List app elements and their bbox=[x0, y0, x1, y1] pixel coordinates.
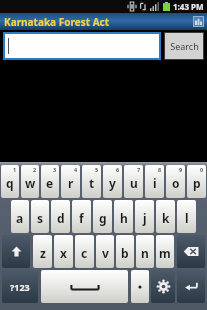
button[interactable]: 2 bbox=[21, 165, 39, 198]
button[interactable]: j bbox=[135, 200, 154, 233]
staticText: v bbox=[102, 245, 109, 261]
staticText: b bbox=[121, 245, 129, 261]
staticText: a bbox=[16, 210, 24, 226]
button[interactable]: Enter bbox=[177, 270, 205, 303]
button[interactable]: k bbox=[156, 200, 175, 233]
staticText: l bbox=[185, 210, 189, 226]
staticText: 3 bbox=[53, 166, 57, 173]
staticText: f bbox=[79, 210, 84, 226]
button[interactable]: 7 bbox=[124, 165, 143, 198]
button[interactable]: l bbox=[177, 200, 196, 233]
staticText: 6 bbox=[116, 166, 120, 173]
staticText: z bbox=[40, 245, 46, 261]
staticText: 7 bbox=[137, 166, 141, 173]
staticText: m bbox=[159, 245, 171, 261]
staticText: x bbox=[60, 245, 67, 261]
staticText: 4 bbox=[74, 166, 78, 173]
staticText: 1:43 PM bbox=[173, 1, 204, 12]
staticText: w bbox=[25, 175, 36, 191]
button[interactable]: v bbox=[96, 235, 114, 268]
staticText: Search bbox=[170, 40, 199, 52]
button[interactable]: Symbols bbox=[2, 270, 38, 303]
staticText: n bbox=[141, 245, 149, 261]
staticText: u bbox=[130, 175, 138, 191]
button[interactable]: 9 bbox=[166, 165, 185, 198]
button[interactable]: Menu bbox=[193, 16, 204, 27]
button[interactable] bbox=[5, 34, 159, 58]
button[interactable]: Space bbox=[41, 270, 128, 303]
staticText: s bbox=[37, 210, 44, 226]
button[interactable]: h bbox=[114, 200, 133, 233]
button[interactable]: 4 bbox=[61, 165, 80, 198]
button[interactable]: 1 bbox=[1, 165, 19, 198]
staticText: i bbox=[153, 175, 157, 191]
staticText: e bbox=[46, 175, 54, 191]
staticText: 5 bbox=[95, 166, 99, 173]
button[interactable]: 0 bbox=[187, 165, 206, 198]
staticText: 1 bbox=[13, 166, 17, 173]
staticText: g bbox=[99, 210, 107, 226]
staticText: q bbox=[6, 175, 14, 191]
button[interactable]: c bbox=[75, 235, 94, 268]
staticText: y bbox=[109, 175, 116, 191]
button[interactable]: Search bbox=[165, 33, 203, 59]
staticText: o bbox=[172, 175, 180, 191]
staticText: 0 bbox=[200, 166, 204, 173]
button[interactable]: n bbox=[136, 235, 154, 268]
button[interactable]: m bbox=[156, 235, 174, 268]
staticText: 2 bbox=[33, 166, 37, 173]
button[interactable]: 5 bbox=[82, 165, 101, 198]
button[interactable]: x bbox=[54, 235, 73, 268]
button[interactable]: a bbox=[11, 200, 29, 233]
button[interactable]: z bbox=[33, 235, 52, 268]
staticText: 9 bbox=[179, 166, 183, 173]
staticText: t bbox=[89, 175, 95, 191]
staticText: 8 bbox=[158, 166, 162, 173]
button[interactable]: b bbox=[116, 235, 134, 268]
staticText: c bbox=[81, 245, 88, 261]
staticText: r bbox=[68, 175, 74, 191]
staticText: j bbox=[143, 210, 147, 226]
button[interactable]: Period bbox=[131, 270, 149, 303]
button[interactable]: Backspace bbox=[177, 235, 205, 268]
button[interactable]: s bbox=[31, 200, 49, 233]
button[interactable]: Settings bbox=[151, 270, 175, 303]
staticText: p bbox=[193, 175, 201, 191]
button[interactable]: 6 bbox=[103, 165, 122, 198]
staticText: h bbox=[120, 210, 128, 226]
staticText: d bbox=[57, 210, 65, 226]
staticText: ?123 bbox=[10, 281, 30, 293]
button[interactable]: d bbox=[51, 200, 70, 233]
staticText: Karnataka Forest Act bbox=[4, 15, 110, 29]
button[interactable]: g bbox=[93, 200, 112, 233]
button[interactable]: Shift bbox=[2, 235, 30, 268]
staticText: k bbox=[162, 210, 170, 226]
button[interactable]: 8 bbox=[145, 165, 164, 198]
button[interactable]: 3 bbox=[41, 165, 59, 198]
button[interactable]: f bbox=[72, 200, 91, 233]
